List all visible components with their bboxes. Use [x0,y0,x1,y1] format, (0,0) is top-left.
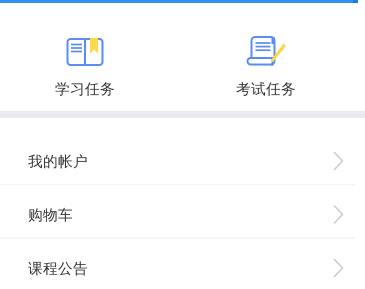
staticText: 考试任务 [236,80,296,98]
button[interactable]: 购物车 [0,184,365,237]
staticText: 我的帐户 [28,152,88,171]
staticText: 学习任务 [55,80,115,98]
button[interactable]: 考试任务 [206,33,326,108]
staticText: 购物车 [28,206,73,224]
button[interactable]: 我的帐户 [0,130,365,184]
button[interactable]: 学习任务 [25,33,145,108]
button[interactable]: 课程公告 [0,237,365,289]
staticText: 课程公告 [28,259,88,278]
